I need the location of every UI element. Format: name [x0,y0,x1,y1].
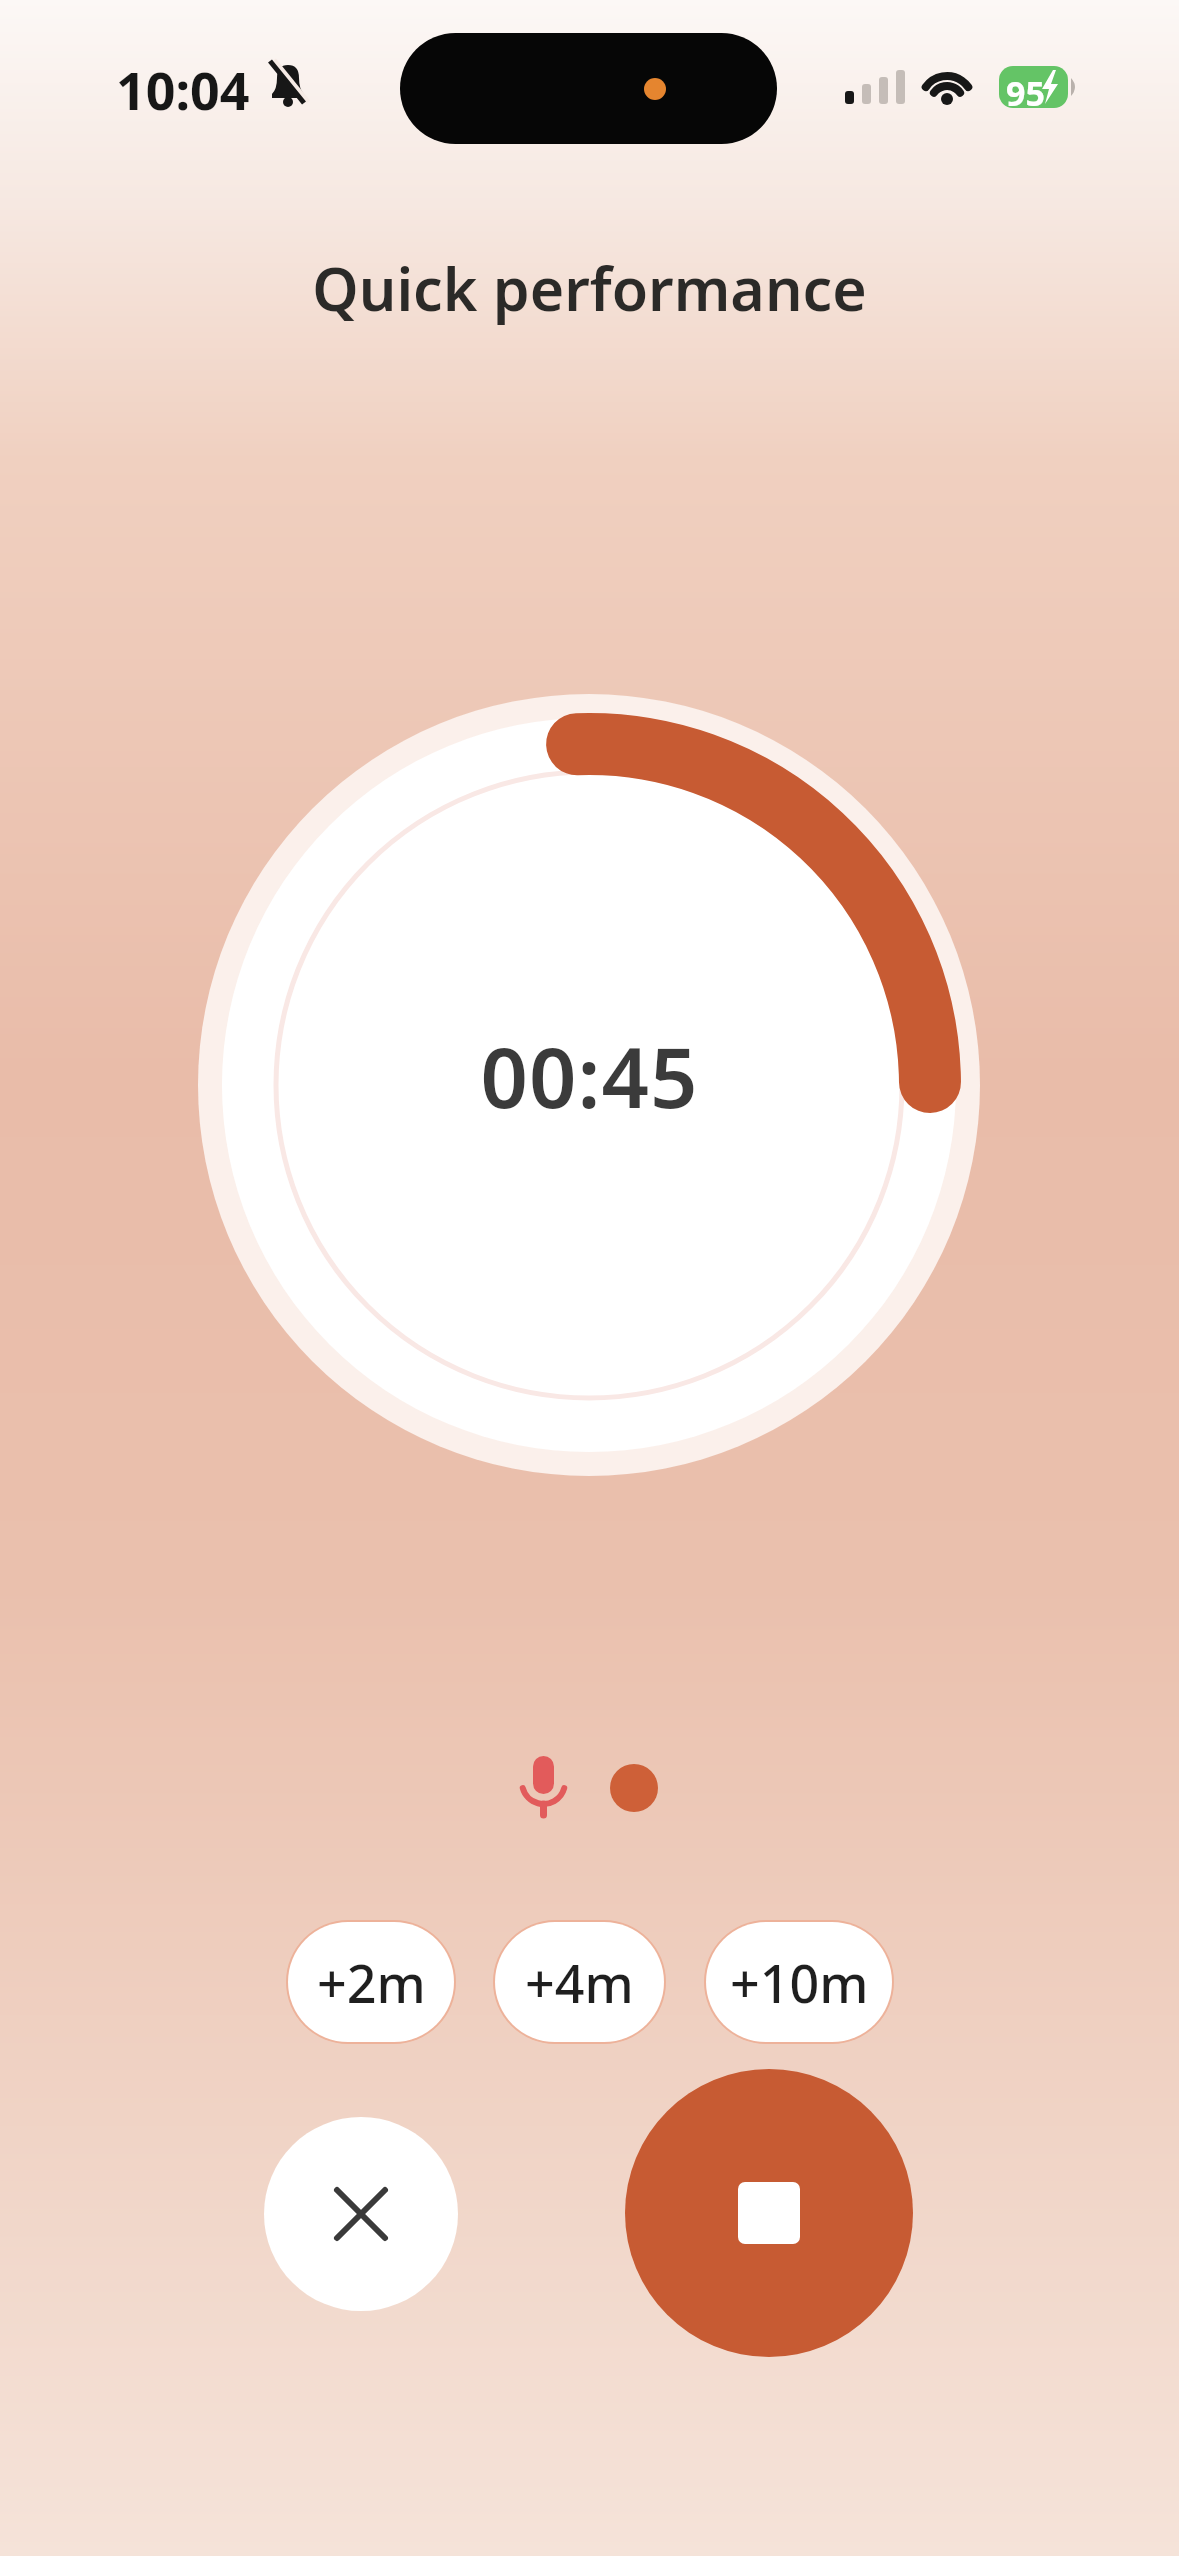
button[interactable]: +2m [288,1922,454,2042]
button[interactable]: +10m [706,1922,892,2042]
button[interactable] [625,2069,913,2357]
staticText: +2m [317,1947,426,2018]
staticText: +10m [730,1947,869,2018]
staticText: 10:04 [116,54,250,125]
staticText: 95 [1006,70,1045,116]
staticText: 00:45 [0,1019,1179,1132]
staticText: +4m [525,1947,634,2018]
button[interactable]: +4m [495,1922,664,2042]
button[interactable] [264,2117,458,2311]
staticText: Quick performance [0,248,1179,328]
